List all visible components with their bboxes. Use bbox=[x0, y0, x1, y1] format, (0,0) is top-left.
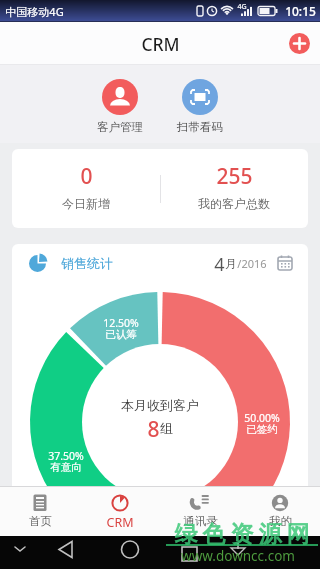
staticText: 12.50% bbox=[103, 316, 139, 329]
staticText: www.downcc.com bbox=[181, 547, 295, 563]
staticText: 本月收到客户 bbox=[121, 397, 199, 413]
staticText: 组 bbox=[160, 420, 173, 436]
staticText: 我的客户总数 bbox=[198, 196, 270, 211]
staticText: 扫带看码 bbox=[177, 120, 223, 134]
button[interactable]: 通讯录 bbox=[160, 487, 240, 536]
staticText: 有意向 bbox=[50, 461, 82, 474]
button[interactable]: 4 bbox=[214, 252, 293, 274]
staticText: 4 bbox=[214, 252, 225, 274]
button[interactable]: CRM bbox=[80, 487, 160, 536]
staticText: 中国移动4G bbox=[5, 4, 64, 19]
button[interactable]: 客户管理 bbox=[86, 79, 154, 134]
staticText: 通讯录 bbox=[183, 514, 218, 528]
staticText: 销售统计 bbox=[61, 255, 113, 271]
staticText: 0 bbox=[80, 162, 93, 191]
staticText: 月 bbox=[225, 256, 237, 271]
staticText: 37.50% bbox=[48, 449, 84, 462]
staticText: CRM bbox=[141, 32, 180, 56]
staticText: 今日新增 bbox=[62, 196, 110, 211]
staticText: 255 bbox=[216, 162, 253, 191]
button[interactable]: 首页 bbox=[0, 487, 80, 536]
staticText: CRM bbox=[106, 514, 134, 531]
staticText: 50.00% bbox=[244, 411, 280, 424]
button[interactable]: 扫带看码 bbox=[166, 79, 234, 134]
staticText: /2016 bbox=[237, 256, 267, 271]
staticText: 已认筹 bbox=[105, 328, 137, 341]
button[interactable]: 我的 bbox=[240, 487, 320, 536]
staticText: 首页 bbox=[29, 514, 52, 528]
staticText: 我的 bbox=[269, 514, 292, 528]
staticText: 4G bbox=[237, 2, 247, 12]
staticText: 绿色资源网 bbox=[172, 520, 312, 546]
button[interactable]: 0 bbox=[12, 149, 160, 228]
staticText: 客户管理 bbox=[97, 120, 143, 134]
staticText: 10:15 bbox=[285, 3, 316, 19]
button[interactable]: 255 bbox=[160, 149, 308, 228]
button[interactable] bbox=[289, 33, 310, 54]
staticText: 8 bbox=[147, 415, 160, 441]
staticText: 已签约 bbox=[246, 423, 278, 436]
